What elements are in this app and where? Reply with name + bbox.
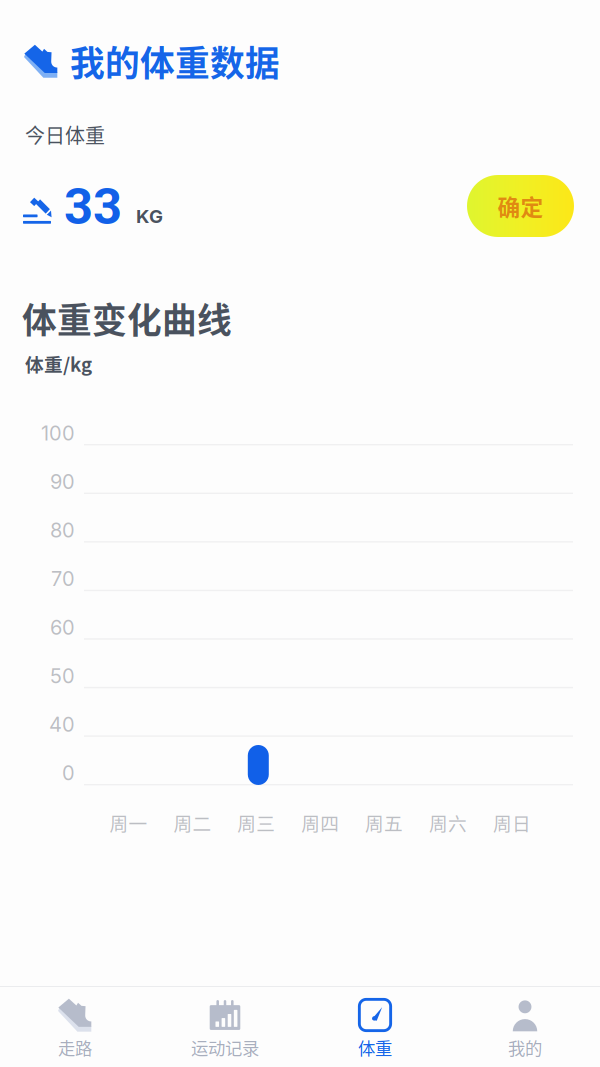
- staticText: 60: [50, 615, 75, 639]
- button[interactable]: 走路: [0, 987, 150, 1067]
- staticText: 40: [49, 712, 75, 737]
- staticText: 0: [62, 761, 75, 785]
- staticText: 周四: [301, 809, 339, 836]
- button[interactable]: 体重: [300, 987, 450, 1067]
- staticText: 今日体重: [25, 120, 105, 149]
- staticText: 体重变化曲线: [22, 293, 232, 343]
- staticText: 体重: [358, 1035, 392, 1060]
- staticText: 周一: [109, 809, 147, 836]
- staticText: 周日: [493, 809, 531, 836]
- staticText: 周三: [237, 809, 275, 836]
- button[interactable]: 我的: [450, 987, 600, 1067]
- staticText: 50: [50, 664, 75, 688]
- staticText: 走路: [58, 1035, 92, 1060]
- staticText: 运动记录: [191, 1035, 259, 1060]
- staticText: 体重/kg: [25, 350, 92, 377]
- staticText: 周二: [173, 809, 211, 836]
- staticText: 周六: [429, 809, 467, 836]
- staticText: 100: [41, 421, 75, 445]
- button[interactable]: 我的体重数据: [0, 0, 280, 86]
- staticText: KG: [136, 205, 163, 228]
- staticText: 70: [51, 567, 75, 591]
- staticText: 周五: [365, 809, 403, 836]
- staticText: 33: [64, 177, 122, 236]
- staticText: 我的: [508, 1035, 542, 1060]
- button[interactable]: 运动记录: [150, 987, 300, 1067]
- staticText: 90: [50, 470, 75, 494]
- button[interactable]: 确定: [467, 175, 574, 237]
- staticText: 确定: [497, 190, 543, 222]
- staticText: 80: [50, 518, 75, 542]
- staticText: 我的体重数据: [70, 36, 280, 86]
